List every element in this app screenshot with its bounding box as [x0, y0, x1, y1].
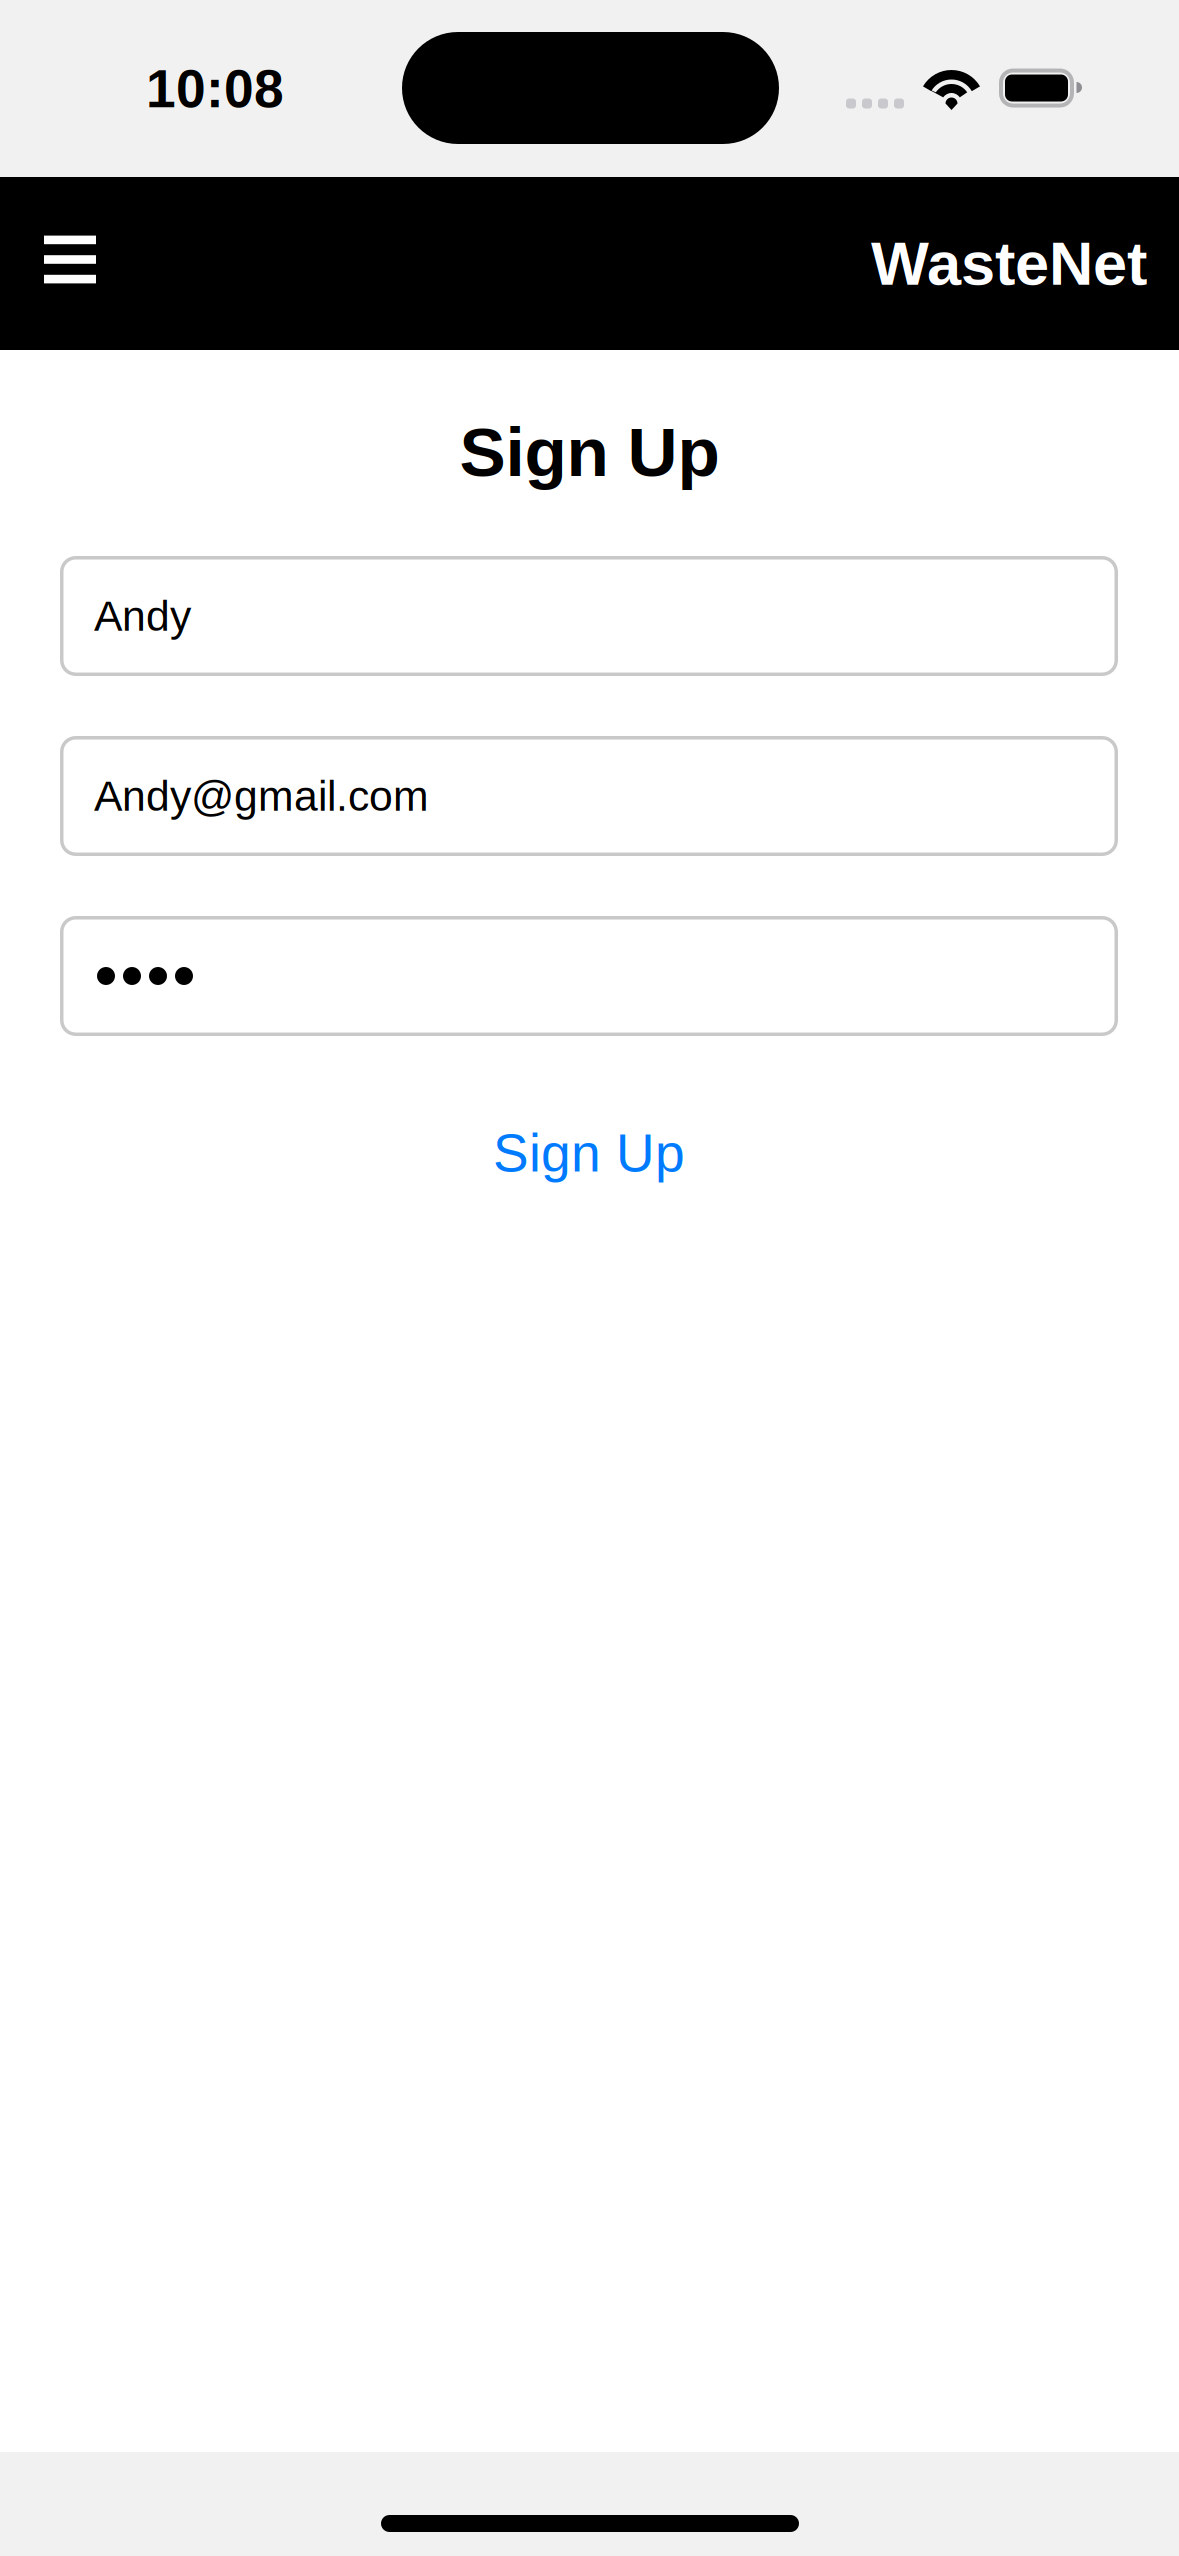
button[interactable]: Andy	[60, 556, 1118, 676]
staticText: WasteNet	[871, 229, 1147, 298]
staticText: Andy	[94, 592, 191, 640]
button[interactable]: Andy@gmail.com	[60, 736, 1118, 856]
button[interactable]: Sign Up	[60, 1125, 1118, 1181]
button[interactable]	[60, 916, 1118, 1036]
staticText: Sign Up	[459, 413, 719, 491]
staticText: Sign Up	[493, 1123, 685, 1183]
button[interactable]: WasteNet	[619, 177, 1179, 350]
button[interactable]: Open menu	[0, 177, 140, 342]
staticText: 10:08	[146, 59, 284, 119]
staticText: Andy@gmail.com	[94, 772, 429, 820]
